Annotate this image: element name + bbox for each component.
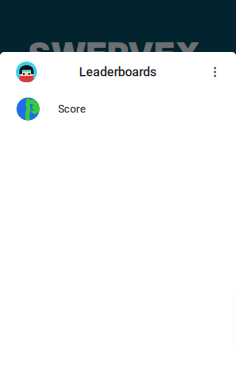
staticText: Score xyxy=(58,103,86,115)
staticText: Leaderboards xyxy=(79,65,157,79)
button[interactable]: Leaderboards xyxy=(0,52,236,92)
staticText: SWERVEX xyxy=(28,34,200,74)
button[interactable]: More options xyxy=(204,61,226,83)
button[interactable]: Score xyxy=(0,92,236,126)
